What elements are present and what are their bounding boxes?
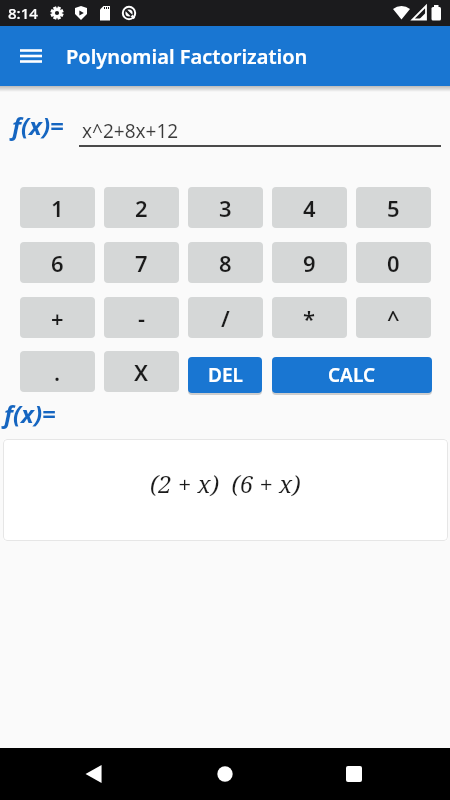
staticText: * — [303, 303, 316, 333]
staticText: 7 — [135, 248, 148, 278]
button[interactable]: 5 — [356, 187, 431, 228]
button[interactable]: * — [272, 297, 347, 338]
button[interactable]: 8 — [188, 242, 263, 283]
button[interactable]: X — [104, 351, 179, 392]
staticText: + — [51, 303, 64, 333]
button[interactable]: + — [20, 297, 95, 338]
button[interactable]: 3 — [188, 187, 263, 228]
staticText: 3 — [219, 193, 232, 223]
staticText: 1 — [51, 193, 64, 223]
staticText: x^2+8x+12 — [82, 118, 179, 144]
button[interactable]: / — [188, 297, 263, 338]
staticText: X — [134, 357, 149, 387]
button[interactable] — [12, 37, 50, 75]
staticText: 4 — [303, 193, 316, 223]
staticText: 6 — [51, 248, 64, 278]
button[interactable]: 6 — [20, 242, 95, 283]
staticText: f(x)= — [4, 397, 56, 430]
button[interactable]: - — [104, 297, 179, 338]
staticText: 2 — [135, 193, 148, 223]
button[interactable] — [330, 750, 378, 798]
staticText: 8:14 — [8, 3, 38, 23]
button[interactable]: 0 — [356, 242, 431, 283]
staticText: 0 — [387, 248, 400, 278]
button[interactable] — [70, 750, 118, 798]
staticText: 9 — [303, 248, 316, 278]
button[interactable]: 9 — [272, 242, 347, 283]
staticText: . — [54, 357, 61, 387]
staticText: DEL — [208, 362, 243, 388]
staticText: 8 — [219, 248, 232, 278]
button[interactable]: 4 — [272, 187, 347, 228]
button[interactable]: 2 — [104, 187, 179, 228]
staticText: (2 + x) (6 + x) — [150, 467, 301, 500]
staticText: / — [221, 303, 230, 333]
button[interactable]: 1 — [20, 187, 95, 228]
staticText: CALC — [328, 362, 376, 388]
button[interactable]: 7 — [104, 242, 179, 283]
staticText: 5 — [387, 193, 400, 223]
staticText: f(x)= — [12, 109, 64, 142]
button[interactable]: CALC — [272, 357, 432, 393]
staticText: Polynomial Factorization — [66, 43, 308, 70]
button[interactable] — [201, 750, 249, 798]
staticText: - — [138, 303, 146, 333]
button[interactable]: ^ — [356, 297, 431, 338]
button[interactable]: . — [20, 351, 95, 392]
button[interactable]: DEL — [188, 357, 262, 393]
staticText: ^ — [387, 303, 400, 333]
